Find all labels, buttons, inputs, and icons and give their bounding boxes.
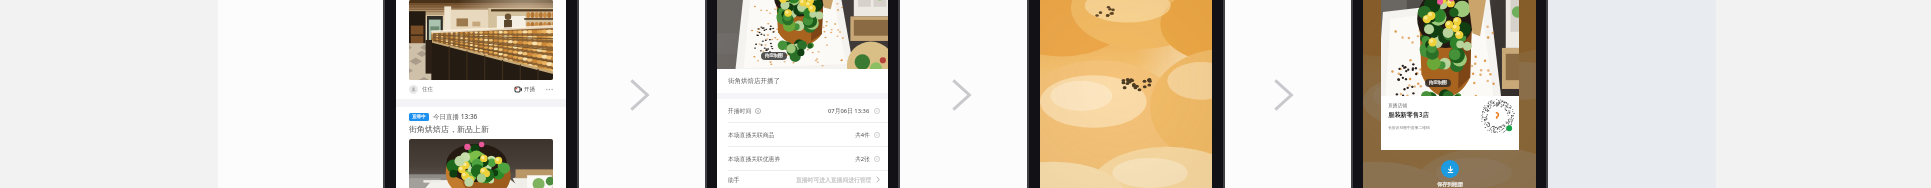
button[interactable]: Next [950, 79, 972, 111]
staticText: 直播时可进入直播间进行管理 [796, 176, 872, 183]
button[interactable]: 住住 [409, 80, 553, 99]
staticText: 住住 [422, 86, 433, 93]
staticText: 直播店铺 [1388, 102, 1408, 108]
staticText: 待定制图 [1429, 80, 1447, 86]
staticText: 街角烘焙店，新品上新 [409, 124, 489, 134]
staticText: 本场直播关联优惠券 [728, 155, 781, 162]
staticText: 长按识别图中直播二维码 [1388, 125, 1430, 130]
button[interactable]: 保存到相册 [1441, 160, 1459, 178]
button[interactable]: 助手 [717, 171, 888, 188]
button[interactable]: 本场直播关联优惠券 [717, 147, 888, 171]
staticText: 07月06日 13:36 [828, 107, 870, 115]
staticText: 今日直播 13:36 [433, 112, 478, 121]
staticText: 助手 [728, 176, 740, 183]
staticText: 街角烘焙店开播了 [728, 77, 780, 85]
staticText: 开播 [524, 86, 535, 93]
staticText: 直播中 [412, 114, 426, 120]
staticText: 待定制图 [765, 53, 783, 59]
button[interactable]: 本场直播关联商品 [717, 123, 888, 147]
staticText: 服装新零售3店 [1388, 110, 1429, 118]
staticText: 共2张 [855, 155, 870, 163]
button[interactable]: Next [628, 79, 650, 111]
staticText: 保存到相册 [1437, 181, 1463, 188]
staticText: 开播时间 [728, 107, 752, 114]
staticText: 共4件 [855, 131, 870, 139]
button[interactable]: Next [1272, 79, 1294, 111]
button[interactable]: 开播时间 [717, 99, 888, 123]
staticText: 本场直播关联商品 [728, 131, 775, 138]
